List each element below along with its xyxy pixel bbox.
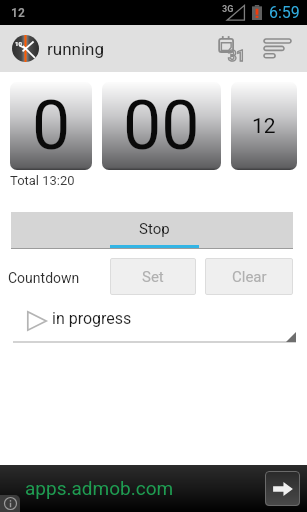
staticText: Clear bbox=[232, 268, 267, 286]
button[interactable]: 0 bbox=[10, 82, 92, 170]
staticText: apps.admob.com bbox=[25, 477, 174, 499]
staticText: Countdown bbox=[8, 270, 80, 286]
staticText: 31 bbox=[228, 47, 246, 65]
button[interactable]: 10 bbox=[6, 35, 104, 62]
staticText: Set bbox=[142, 268, 164, 286]
button[interactable]: apps.admob.com bbox=[0, 465, 307, 512]
staticText: in progress bbox=[52, 309, 132, 328]
button[interactable]: 00 bbox=[102, 82, 221, 170]
button[interactable]: Stop bbox=[11, 212, 293, 249]
staticText: Total 13:20 bbox=[10, 173, 75, 188]
button[interactable]: Next ad bbox=[265, 471, 300, 506]
button[interactable]: Ad info bbox=[0, 495, 20, 512]
button[interactable]: Set bbox=[110, 258, 196, 295]
button[interactable]: Calendar bbox=[210, 25, 254, 72]
staticText: 3G bbox=[222, 4, 234, 15]
staticText: 6:59 bbox=[269, 3, 300, 22]
staticText: 00 bbox=[123, 86, 200, 166]
staticText: Stop bbox=[139, 220, 170, 238]
button[interactable]: Clear bbox=[205, 258, 293, 295]
button[interactable]: More options bbox=[255, 25, 299, 72]
staticText: running bbox=[47, 39, 104, 59]
staticText: 12 bbox=[11, 6, 25, 20]
staticText: 0 bbox=[32, 86, 71, 166]
button[interactable]: in progress bbox=[13, 311, 296, 343]
staticText: 10 bbox=[15, 40, 22, 47]
button[interactable]: 12 bbox=[231, 82, 297, 170]
staticText: 12 bbox=[252, 114, 276, 139]
